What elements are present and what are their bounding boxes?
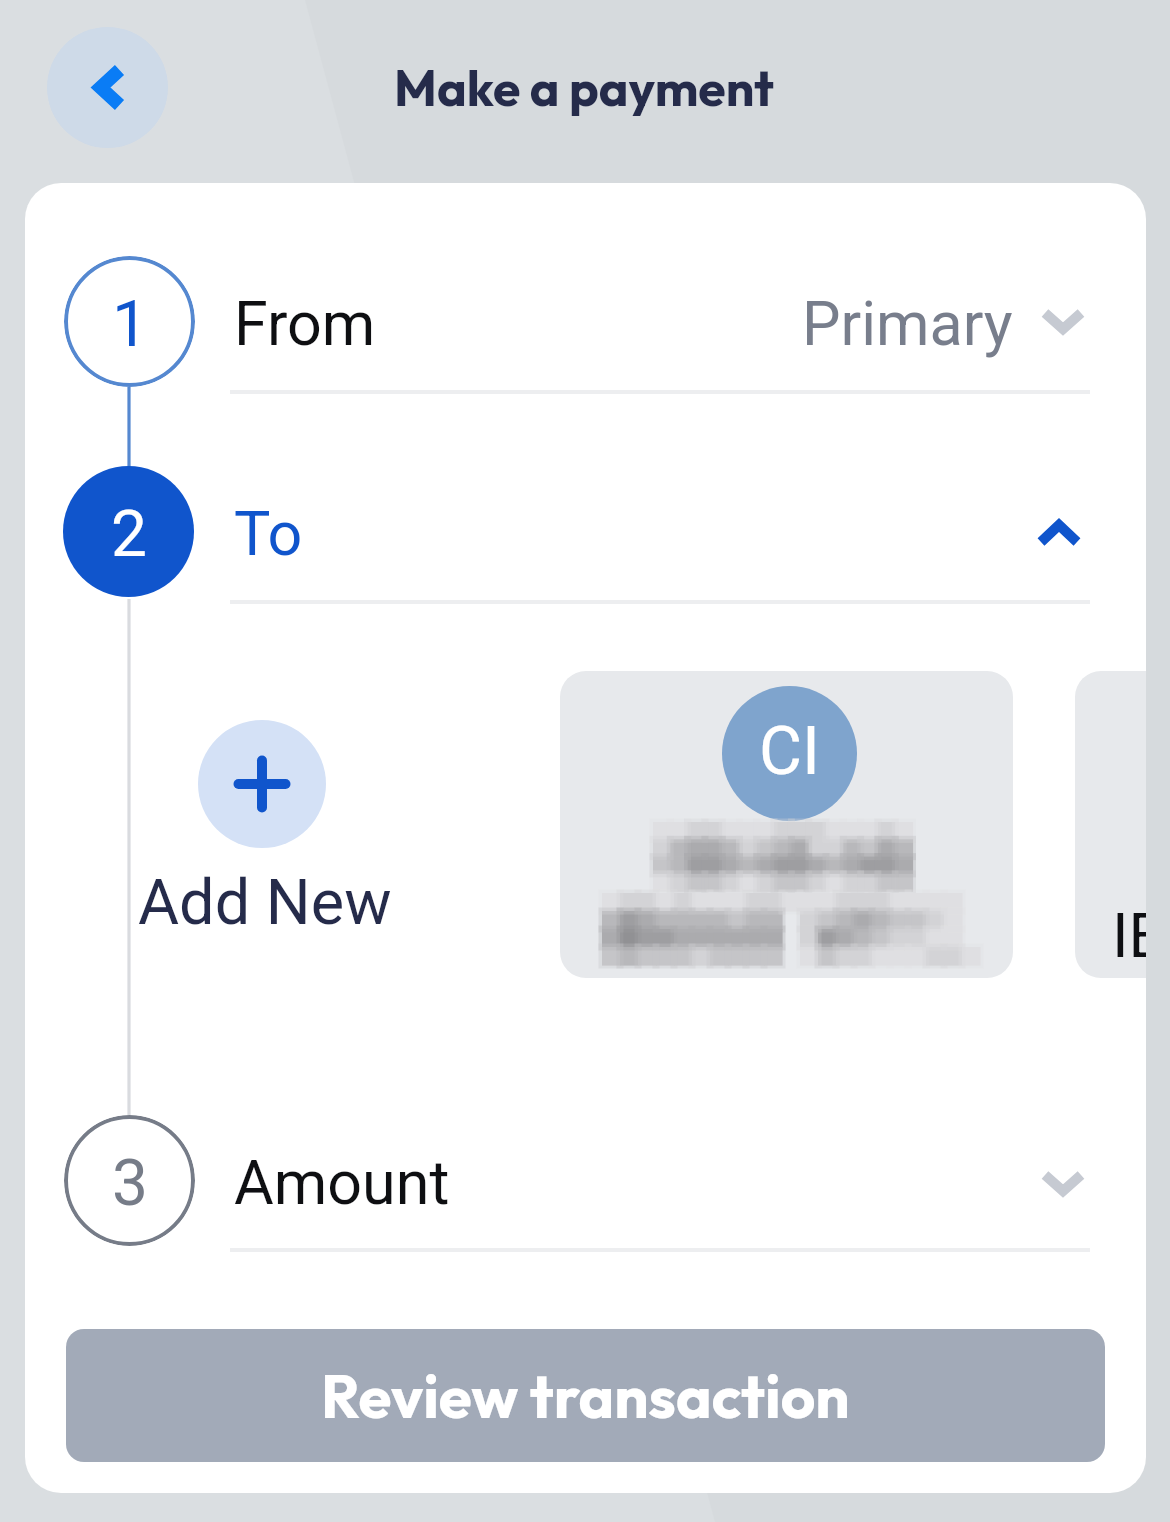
staticText: From [234, 288, 376, 359]
staticText: 2 [111, 497, 147, 572]
button[interactable]: From [230, 256, 1090, 386]
button[interactable]: IE [1075, 671, 1146, 978]
button[interactable]: Amount [230, 1115, 1090, 1245]
staticText: Primary [802, 288, 1013, 359]
staticText: Amount [234, 1147, 450, 1218]
staticText: 1 [112, 287, 148, 362]
staticText: Review transaction [321, 1358, 850, 1434]
button[interactable]: Review transaction [66, 1329, 1105, 1462]
button[interactable]: Back [47, 27, 168, 148]
button[interactable]: Add New [139, 720, 401, 930]
staticText: IE [1112, 900, 1146, 971]
staticText: To [234, 498, 303, 569]
staticText: Add New [138, 866, 392, 940]
button[interactable]: CI [560, 671, 1013, 978]
staticText: 3 [112, 1146, 148, 1221]
staticText: Make a payment [394, 56, 774, 119]
button[interactable]: To [230, 466, 1090, 596]
staticText: CI [759, 713, 820, 790]
